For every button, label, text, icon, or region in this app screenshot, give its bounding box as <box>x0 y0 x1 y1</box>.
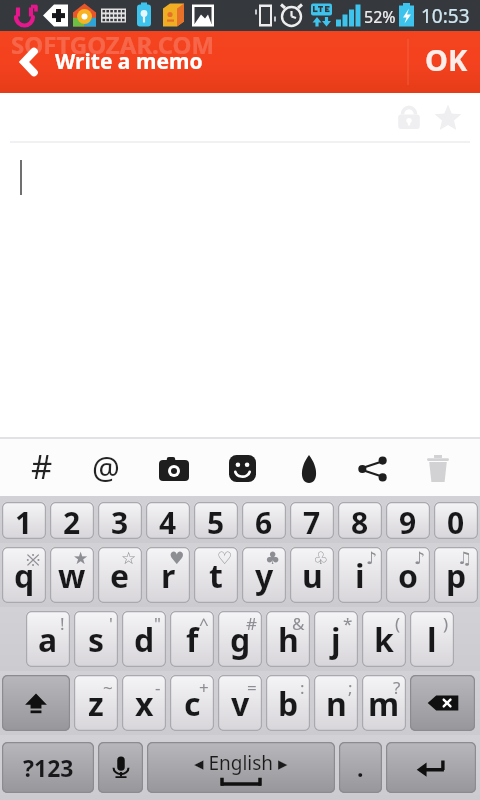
button[interactable]: j <box>314 611 358 667</box>
button[interactable]: Lock <box>394 102 424 132</box>
button[interactable]: share <box>339 439 405 496</box>
staticText: x <box>135 682 154 726</box>
staticText: ※ <box>26 548 41 571</box>
staticText: d <box>134 618 155 662</box>
button[interactable]: at <box>73 439 139 496</box>
button[interactable]: h <box>266 611 310 667</box>
button[interactable]: 3 <box>98 502 142 539</box>
staticText: ☆ <box>121 548 137 568</box>
staticText: ?123 <box>23 752 74 783</box>
button[interactable]: mic <box>98 742 143 793</box>
button[interactable]: v <box>218 675 262 731</box>
staticText: @ <box>92 446 120 488</box>
button[interactable]: x <box>122 675 166 731</box>
button[interactable]: emoji <box>209 439 275 496</box>
button[interactable]: ?123 <box>2 742 94 793</box>
staticText: ( <box>395 612 401 635</box>
button[interactable]: . <box>339 742 382 793</box>
staticText: 2 <box>63 502 81 539</box>
staticText: o <box>398 554 419 598</box>
button[interactable]: 8 <box>338 502 382 539</box>
button[interactable]: back <box>410 675 475 731</box>
button[interactable]: o <box>386 547 430 603</box>
staticText: - <box>155 676 161 699</box>
staticText: y <box>255 554 274 598</box>
button[interactable]: i <box>338 547 382 603</box>
staticText: 10:53 <box>421 3 470 29</box>
button[interactable]: 6 <box>242 502 286 539</box>
button[interactable]: r <box>146 547 190 603</box>
button[interactable]: c <box>170 675 214 731</box>
button[interactable]: 4 <box>146 502 190 539</box>
button[interactable]: g <box>218 611 262 667</box>
staticText: OK <box>425 40 468 79</box>
button[interactable]: u <box>290 547 334 603</box>
staticText: b <box>278 682 299 726</box>
staticText: : <box>300 676 305 699</box>
staticText: v <box>231 682 250 726</box>
button[interactable]: p <box>434 547 478 603</box>
button[interactable]: n <box>314 675 358 731</box>
staticText: i <box>355 554 365 598</box>
staticText: e <box>110 554 130 598</box>
button[interactable]: hash <box>9 439 75 496</box>
button[interactable]: t <box>194 547 238 603</box>
staticText: t <box>209 554 223 598</box>
button[interactable]: b <box>266 675 310 731</box>
staticText: 6 <box>255 502 273 539</box>
button[interactable]: e <box>98 547 142 603</box>
button[interactable]: q <box>2 547 46 603</box>
button[interactable]: drop <box>276 439 342 496</box>
button[interactable]: space <box>147 742 335 793</box>
staticText: ♡ <box>217 548 233 568</box>
button[interactable]: Favorite <box>433 103 463 133</box>
staticText: a <box>38 618 58 662</box>
button[interactable]: k <box>362 611 406 667</box>
button[interactable]: 9 <box>386 502 430 539</box>
staticText: ♧ <box>313 548 329 568</box>
button[interactable]: OK <box>412 31 480 93</box>
button[interactable]: m <box>362 675 406 731</box>
staticText: ! <box>60 612 65 635</box>
button[interactable]: s <box>74 611 118 667</box>
button[interactable]: 5 <box>194 502 238 539</box>
button[interactable]: trash <box>405 439 471 496</box>
staticText: SOFTGOZAR.COM <box>11 28 215 61</box>
staticText: ) <box>443 612 449 635</box>
staticText: q <box>14 554 35 598</box>
staticText: u <box>302 554 323 598</box>
button[interactable]: f <box>170 611 214 667</box>
button[interactable]: w <box>50 547 94 603</box>
button[interactable]: 2 <box>50 502 94 539</box>
button[interactable]: 7 <box>290 502 334 539</box>
button[interactable]: 0 <box>434 502 478 539</box>
staticText: ~ <box>103 676 113 699</box>
staticText: ♥ <box>169 548 185 568</box>
staticText: r <box>161 554 176 598</box>
staticText: # <box>31 444 53 489</box>
staticText: ^ <box>199 612 209 635</box>
staticText: g <box>230 618 251 662</box>
button[interactable]: l <box>410 611 454 667</box>
button[interactable]: enter <box>386 742 476 793</box>
staticText: ♪ <box>414 548 425 568</box>
button[interactable]: z <box>74 675 118 731</box>
staticText: z <box>88 682 104 726</box>
staticText: c <box>184 682 201 726</box>
button[interactable]: a <box>26 611 70 667</box>
button[interactable]: cam <box>141 439 207 496</box>
staticText: 9 <box>399 502 417 539</box>
staticText: f <box>186 618 199 662</box>
staticText: 7 <box>303 502 321 539</box>
staticText: 0 <box>447 502 465 539</box>
button[interactable]: 1 <box>2 502 46 539</box>
staticText: w <box>58 554 86 598</box>
staticText: h <box>278 618 299 662</box>
staticText: . <box>357 752 364 783</box>
button[interactable]: y <box>242 547 286 603</box>
button[interactable]: d <box>122 611 166 667</box>
button[interactable]: shift <box>2 675 70 731</box>
staticText: 1 <box>15 502 33 539</box>
staticText: ♣ <box>265 548 281 568</box>
button[interactable]: Back <box>6 31 52 93</box>
